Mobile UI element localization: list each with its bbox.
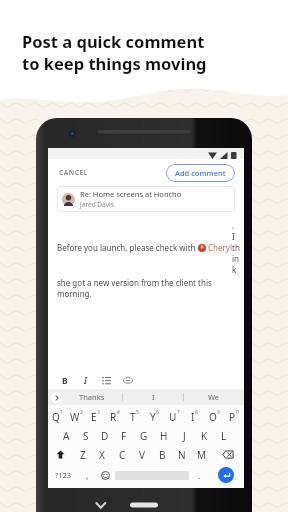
staticText: G [140, 429, 148, 443]
staticText: F [121, 429, 127, 443]
staticText: P [229, 410, 236, 424]
staticText: T [130, 410, 136, 424]
button[interactable]: More suggestions [51, 392, 62, 403]
staticText: A [63, 429, 70, 443]
staticText: 7 [177, 409, 180, 416]
staticText: Add comment [175, 168, 226, 178]
staticText: CANCEL [59, 168, 88, 178]
staticText: S [83, 429, 89, 443]
button[interactable]: O [204, 407, 224, 426]
staticText: 1 [60, 409, 63, 416]
button[interactable]: K [194, 426, 214, 445]
button[interactable]: T [124, 407, 144, 426]
button[interactable]: , [78, 464, 96, 486]
staticText: I [152, 392, 155, 402]
button[interactable]: Q [48, 407, 67, 426]
button[interactable]: ?123 [48, 464, 78, 486]
button[interactable]: U [164, 407, 184, 426]
staticText: Q [52, 410, 60, 424]
staticText: R [110, 410, 117, 424]
staticText: I [191, 410, 195, 424]
staticText: E [91, 410, 97, 424]
staticText: We [208, 392, 220, 402]
staticText: 0 [236, 409, 239, 416]
staticText: , [86, 469, 89, 481]
staticText: 8 [195, 409, 198, 416]
button[interactable]: Backspace [212, 445, 244, 464]
button[interactable]: S [76, 426, 95, 445]
button[interactable]: R [105, 407, 124, 426]
staticText: X [99, 448, 105, 462]
staticText: Jared Davis [80, 200, 114, 209]
staticText: C [119, 448, 126, 462]
button[interactable]: F [114, 426, 134, 445]
staticText: 4 [117, 409, 120, 416]
staticText: to keep things moving [22, 52, 207, 74]
staticText: 6 [156, 409, 159, 416]
staticText: Before you launch, please check with [57, 242, 198, 253]
staticText: Post a quick comment [22, 30, 205, 52]
button[interactable]: H [154, 426, 174, 445]
button[interactable]: I [184, 407, 204, 426]
button[interactable]: Z [73, 445, 92, 464]
button[interactable]: J [174, 426, 194, 445]
staticText: B [62, 375, 68, 387]
button[interactable]: D [95, 426, 114, 445]
button[interactable]: X [92, 445, 112, 464]
button[interactable]: Italic [77, 372, 94, 389]
button[interactable]: C [112, 445, 132, 464]
button[interactable]: N [172, 445, 192, 464]
staticText: 3 [97, 409, 100, 416]
button[interactable]: CANCEL [57, 165, 90, 181]
button[interactable]: . [190, 464, 208, 486]
staticText: B [159, 448, 166, 462]
staticText: Y [150, 410, 156, 424]
button[interactable]: E [86, 407, 105, 426]
button[interactable]: Add comment [166, 164, 235, 182]
staticText: . [198, 469, 201, 481]
staticText: I [84, 375, 87, 387]
staticText: K [201, 429, 208, 443]
button[interactable]: Re: Home screens at Honcho [57, 186, 235, 212]
staticText: J [183, 429, 186, 443]
button[interactable]: Bulleted list [98, 372, 115, 389]
button[interactable]: I [123, 389, 183, 405]
button[interactable]: V [132, 445, 152, 464]
button[interactable]: W [67, 407, 86, 426]
staticText: ?123 [55, 470, 72, 480]
staticText: 9 [217, 409, 220, 416]
button[interactable]: L [214, 426, 234, 445]
button[interactable]: Thanks [62, 389, 122, 405]
staticText: Z [80, 448, 86, 462]
button[interactable]: B [152, 445, 172, 464]
staticText: she got a new version from the client th… [57, 277, 235, 299]
staticText: U [169, 410, 177, 424]
staticText: Thanks [79, 392, 105, 402]
button[interactable]: P [224, 407, 244, 426]
staticText: M [197, 448, 207, 462]
staticText: N [178, 448, 186, 462]
button[interactable]: Emoji [96, 464, 114, 486]
staticText: V [139, 448, 145, 462]
button[interactable]: Attach link [119, 372, 136, 389]
staticText: H [160, 429, 168, 443]
staticText: Cheryl [208, 242, 232, 253]
staticText: D [101, 429, 109, 443]
button[interactable]: Shift [48, 445, 73, 464]
button[interactable]: Y [144, 407, 164, 426]
button[interactable]: M [192, 445, 212, 464]
staticText: . I think [232, 220, 235, 275]
staticText: L [221, 429, 227, 443]
button[interactable]: A [57, 426, 76, 445]
button[interactable]: Bold [56, 372, 73, 389]
staticText: W [70, 410, 80, 424]
staticText: Re: Home screens at Honcho [80, 189, 182, 199]
staticText: O [209, 410, 217, 424]
button[interactable]: G [134, 426, 154, 445]
button[interactable]: We [184, 389, 244, 405]
button[interactable]: Send [218, 467, 234, 483]
staticText: 5 [136, 409, 139, 416]
staticText: 2 [80, 409, 83, 416]
